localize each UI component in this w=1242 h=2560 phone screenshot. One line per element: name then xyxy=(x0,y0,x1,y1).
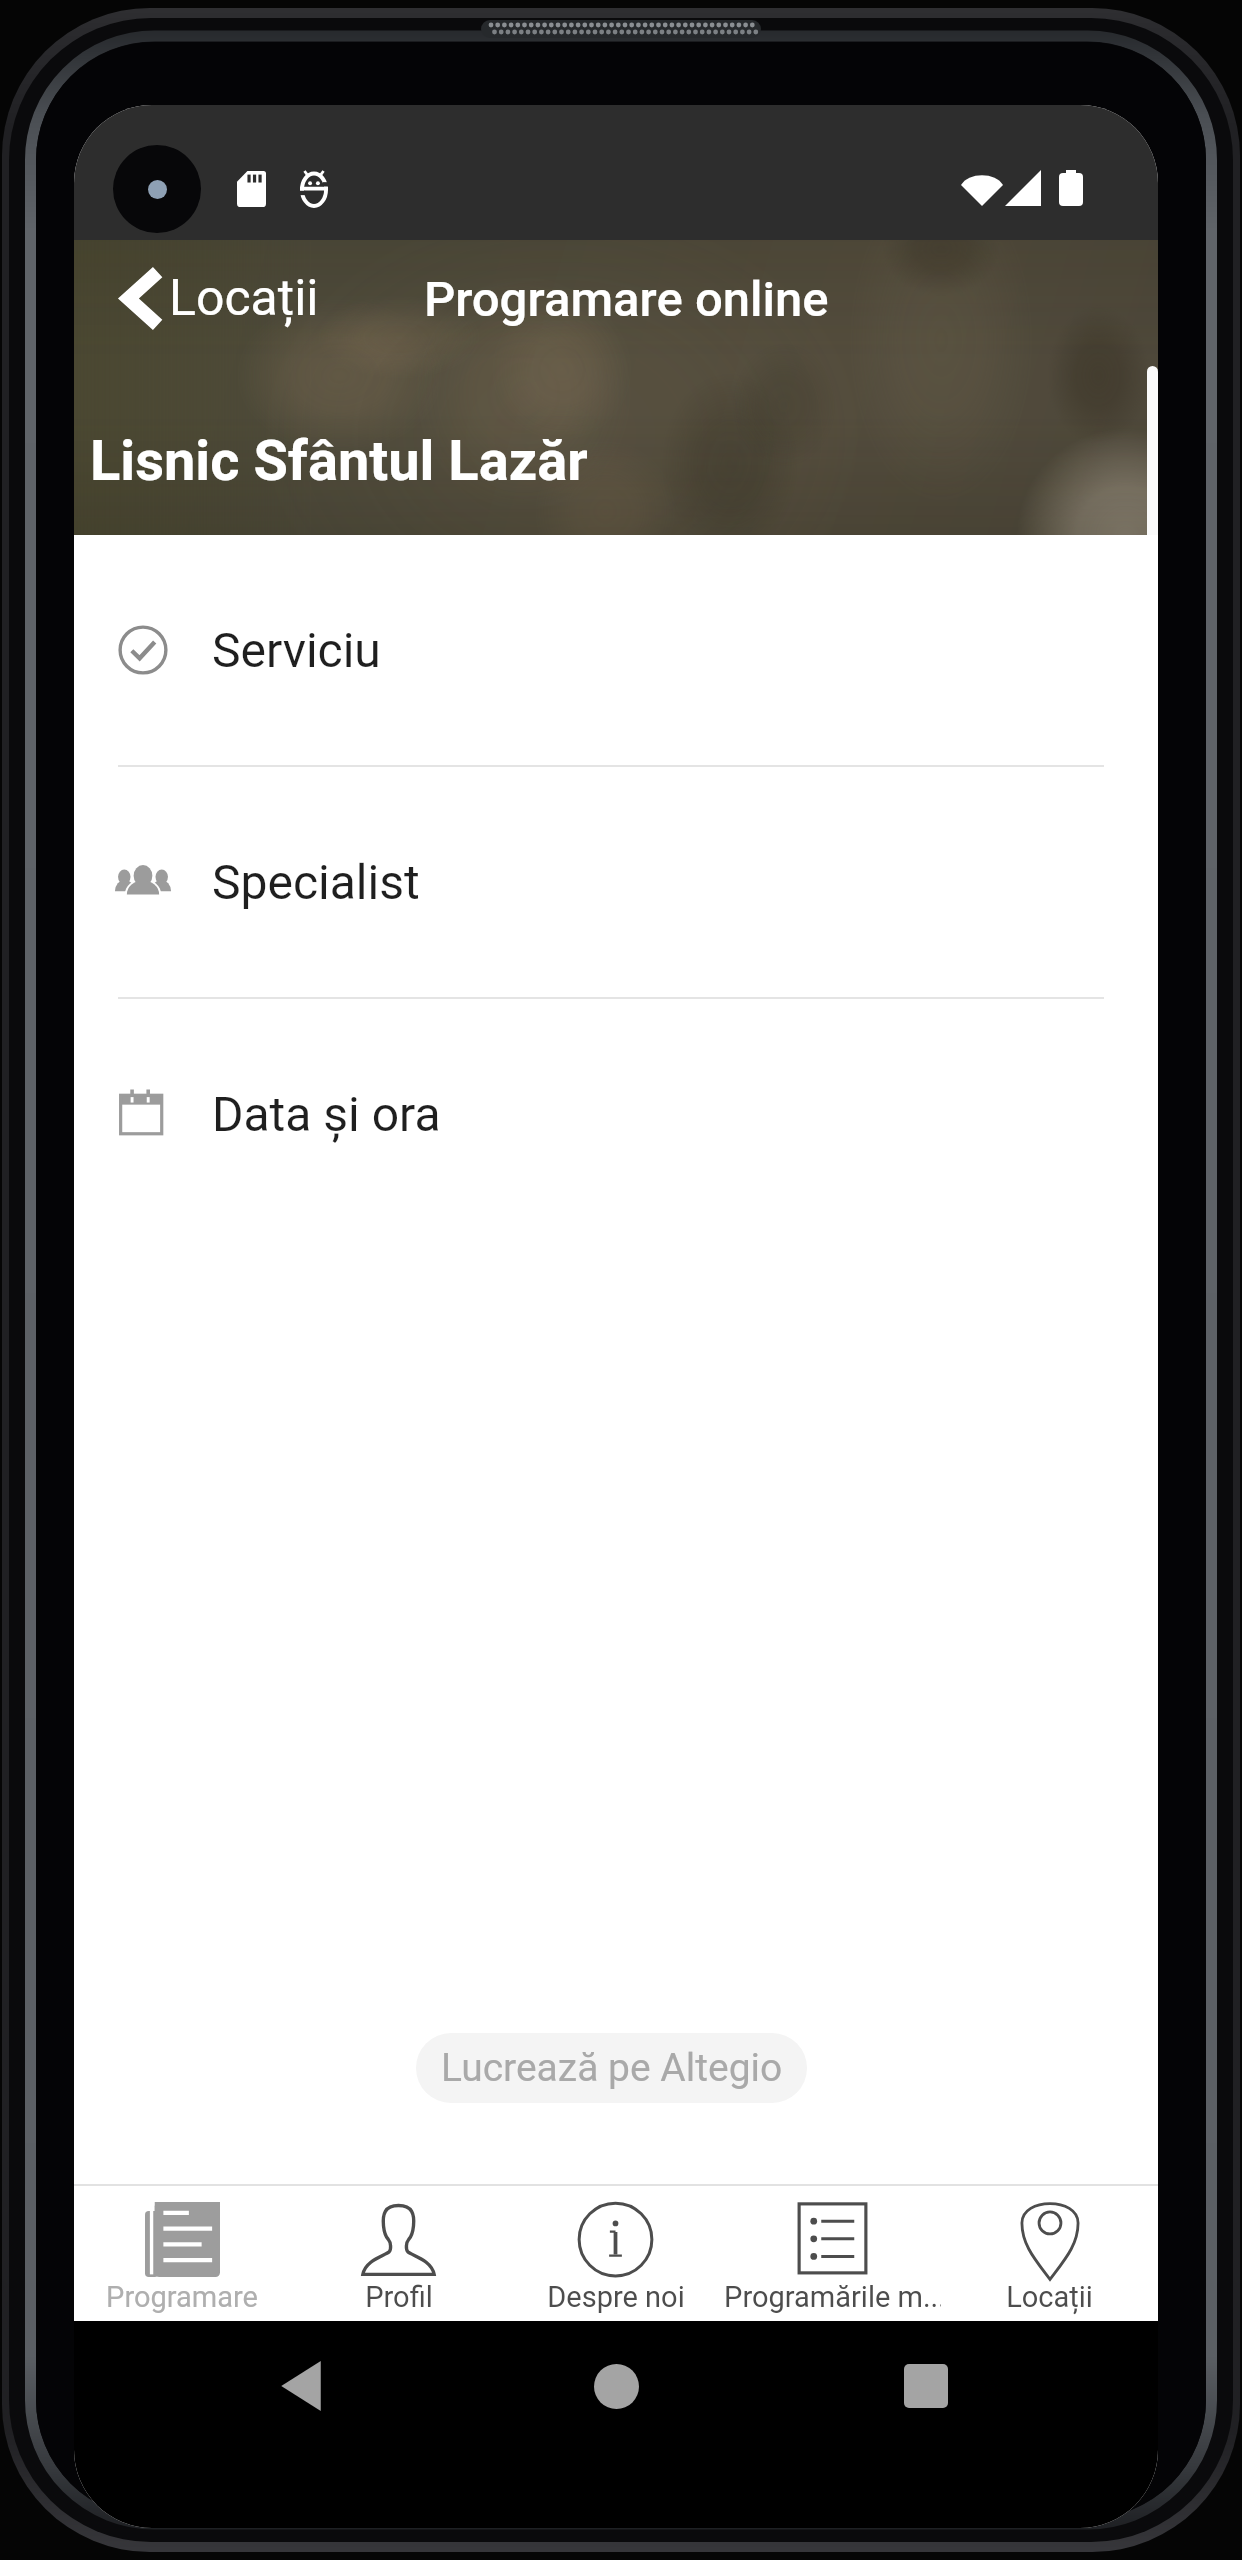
staticText: Locații xyxy=(1006,2280,1093,2314)
button[interactable]: Locații xyxy=(941,2186,1158,2321)
staticText: Lisnic Sfântul Lazăr xyxy=(90,428,588,494)
button[interactable]: Data și ora xyxy=(74,999,1158,1229)
staticText: Lucrează pe Altegio xyxy=(441,2045,783,2091)
staticText: Despre noi xyxy=(547,2280,685,2314)
button[interactable]: Despre noi xyxy=(507,2186,724,2321)
staticText: Locații xyxy=(169,269,319,328)
button[interactable]: Back xyxy=(253,2338,349,2434)
button[interactable]: Serviciu xyxy=(74,535,1158,765)
button[interactable]: Home xyxy=(568,2338,664,2434)
staticText: Profil xyxy=(365,2280,433,2314)
button[interactable]: Lucrează pe Altegio xyxy=(416,2033,807,2103)
button[interactable]: Recent apps xyxy=(878,2338,974,2434)
button[interactable]: Specialist xyxy=(74,767,1158,997)
button[interactable]: Programare xyxy=(74,2186,290,2321)
button[interactable]: Profil xyxy=(290,2186,507,2321)
staticText: Specialist xyxy=(212,854,420,910)
staticText: Serviciu xyxy=(212,622,381,678)
staticText: Programare xyxy=(106,2280,258,2314)
staticText: Programare online xyxy=(424,271,829,328)
staticText: Data și ora xyxy=(212,1086,441,1142)
button[interactable]: Programările m... xyxy=(724,2186,941,2321)
button[interactable]: Locații xyxy=(111,256,329,340)
staticText: Programările m... xyxy=(724,2280,941,2314)
